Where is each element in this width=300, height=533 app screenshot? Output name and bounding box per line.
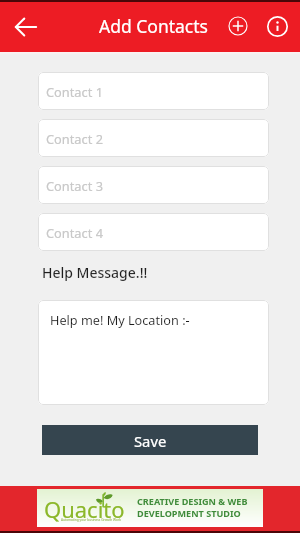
staticText: Help me! My Location :-	[50, 311, 190, 328]
button[interactable]: Help me! My Location :-	[38, 300, 269, 405]
staticText: Contact 1	[46, 83, 103, 100]
button[interactable]: Contact 2	[38, 119, 269, 157]
button[interactable]: Contact 3	[38, 166, 269, 204]
staticText: Save	[134, 431, 167, 451]
button[interactable]: Contact 4	[38, 213, 269, 251]
staticText: Quacito	[44, 494, 125, 524]
staticText: Help Message.!!	[42, 263, 148, 282]
button[interactable]: Save	[42, 425, 258, 455]
staticText: Contact 4	[46, 224, 103, 241]
staticText: CREATIVE DESIGN & WEB	[137, 495, 248, 507]
staticText: Contact 3	[46, 177, 103, 194]
staticText: Add Contacts	[99, 14, 208, 38]
staticText: DEVELOPMENT STUDIO	[137, 507, 241, 519]
staticText: Automating your business Growth Work	[61, 518, 121, 522]
button[interactable]: Add contact	[226, 14, 250, 38]
button[interactable]: Info	[265, 14, 289, 38]
button[interactable]: Quacito	[37, 489, 263, 527]
button[interactable]: Back	[15, 16, 37, 38]
staticText: Contact 2	[46, 130, 103, 147]
button[interactable]: Contact 1	[38, 72, 269, 110]
